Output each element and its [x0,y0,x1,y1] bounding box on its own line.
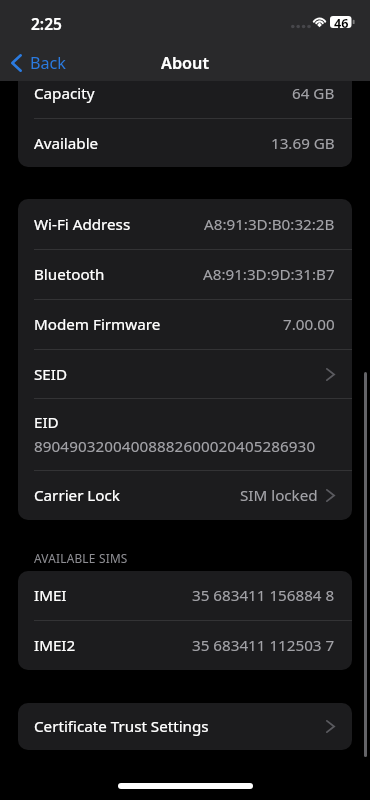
staticText: A8:91:3D:B0:32:2B [204,214,335,235]
staticText: Available [34,133,99,154]
staticText: About [161,52,209,74]
button[interactable]: Certificate Trust Settings [18,703,352,750]
staticText: Wi-Fi Address [34,214,131,235]
button[interactable]: Bluetooth [18,250,352,299]
staticText: Certificate Trust Settings [34,716,209,737]
button[interactable]: IMEI [18,571,352,620]
staticText: Modem Firmware [34,314,161,335]
staticText: Capacity [34,83,95,104]
staticText: 64 GB [292,83,335,104]
button[interactable]: Wi-Fi Address [18,199,352,249]
staticText: IMEI [34,585,67,606]
other: Back [11,54,22,72]
staticText: Bluetooth [34,264,105,285]
button[interactable]: Carrier Lock [18,471,352,520]
staticText: 35 683411 112503 7 [192,635,335,656]
staticText: IMEI2 [34,635,76,656]
staticText: 7.00.00 [283,314,335,335]
button[interactable]: Available [18,119,352,167]
button[interactable]: Back [0,48,77,78]
button[interactable]: Capacity [18,68,352,118]
button[interactable]: EID [18,399,352,470]
staticText: Carrier Lock [34,485,120,506]
staticText: A8:91:3D:9D:31:B7 [203,264,335,285]
staticText: 46 [334,15,349,28]
staticText: SIM locked [240,485,318,506]
staticText: 35 683411 156884 8 [192,585,335,606]
staticText: 2:25 [31,13,62,34]
staticText: 13.69 GB [271,133,335,154]
staticText: SEID [34,364,68,385]
staticText: EID [34,412,59,433]
staticText: Back [30,52,67,74]
staticText: 89049032004008882600020405286930 [34,436,316,457]
button[interactable]: IMEI2 [18,621,352,670]
staticText: AVAILABLE SIMS [34,550,128,566]
button[interactable]: SEID [18,350,352,398]
button[interactable]: Modem Firmware [18,300,352,349]
